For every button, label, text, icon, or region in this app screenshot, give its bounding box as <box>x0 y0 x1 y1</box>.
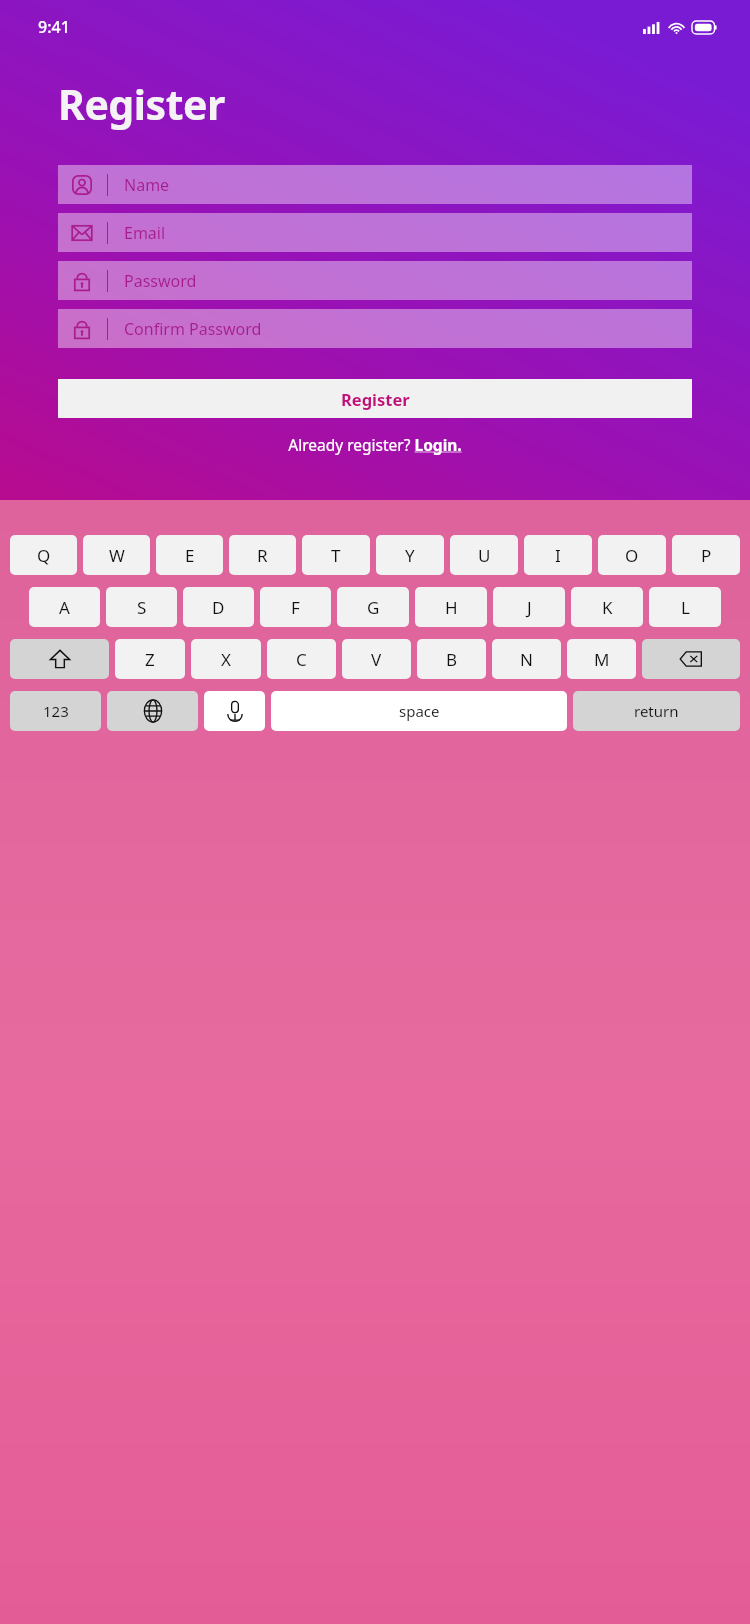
button[interactable]: I <box>524 535 592 575</box>
staticText: Register <box>58 76 225 132</box>
button[interactable]: C <box>267 639 336 679</box>
staticText: T <box>331 544 341 567</box>
staticText: X <box>221 648 231 671</box>
staticText: E <box>185 544 195 567</box>
staticText: A <box>59 596 70 619</box>
button[interactable]: Backspace <box>642 639 740 679</box>
staticText: U <box>478 544 491 567</box>
button[interactable]: X <box>191 639 261 679</box>
staticText: N <box>520 648 533 671</box>
button[interactable]: U <box>450 535 518 575</box>
button[interactable]: G <box>337 587 409 627</box>
button[interactable]: V <box>342 639 411 679</box>
staticText: Register <box>341 388 410 410</box>
button[interactable]: L <box>649 587 721 627</box>
staticText: Name <box>124 174 170 196</box>
staticText: S <box>137 596 147 619</box>
button[interactable]: W <box>83 535 150 575</box>
button[interactable]: R <box>229 535 296 575</box>
button[interactable]: return <box>573 691 740 731</box>
staticText: M <box>594 648 610 671</box>
staticText: Z <box>145 648 155 671</box>
button[interactable]: N <box>492 639 561 679</box>
button[interactable]: Confirm Password <box>58 309 692 348</box>
button[interactable]: E <box>156 535 223 575</box>
button[interactable]: O <box>598 535 666 575</box>
button[interactable]: D <box>183 587 254 627</box>
button[interactable]: Name <box>58 165 692 204</box>
button[interactable]: Password <box>58 261 692 300</box>
button[interactable]: 123 <box>10 691 101 731</box>
button[interactable]: J <box>493 587 565 627</box>
staticText: K <box>602 596 613 619</box>
button[interactable]: Q <box>10 535 77 575</box>
button[interactable]: Register <box>58 379 692 418</box>
staticText: W <box>109 544 125 567</box>
button[interactable]: K <box>571 587 643 627</box>
button[interactable]: Shift <box>10 639 109 679</box>
staticText: V <box>371 648 382 671</box>
staticText: L <box>681 596 690 619</box>
button[interactable]: space <box>271 691 567 731</box>
staticText: R <box>257 544 268 567</box>
button[interactable]: M <box>567 639 636 679</box>
button[interactable]: Next keyboard <box>107 691 198 731</box>
staticText: O <box>625 544 639 567</box>
staticText: J <box>527 596 532 619</box>
staticText: P <box>701 544 712 567</box>
staticText: 123 <box>43 701 69 721</box>
staticText: I <box>555 544 561 567</box>
button[interactable]: A <box>29 587 100 627</box>
button[interactable]: H <box>415 587 487 627</box>
staticText: space <box>399 701 440 721</box>
button[interactable]: Y <box>376 535 444 575</box>
staticText: Email <box>124 222 166 244</box>
staticText: Confirm Password <box>124 318 262 340</box>
button[interactable]: Already register? Login. <box>288 434 462 455</box>
button[interactable]: B <box>417 639 486 679</box>
staticText: B <box>446 648 458 671</box>
staticText: Password <box>124 270 197 292</box>
staticText: D <box>212 596 225 619</box>
button[interactable]: Dictate <box>204 691 265 731</box>
button[interactable]: P <box>672 535 740 575</box>
staticText: H <box>445 596 458 619</box>
button[interactable]: T <box>302 535 370 575</box>
staticText: Y <box>405 544 415 567</box>
staticText: 9:41 <box>38 16 70 38</box>
button[interactable]: S <box>106 587 177 627</box>
staticText: F <box>291 596 300 619</box>
staticText: G <box>367 596 380 619</box>
staticText: Q <box>37 544 51 567</box>
button[interactable]: Email <box>58 213 692 252</box>
staticText: return <box>634 701 679 721</box>
button[interactable]: Z <box>115 639 185 679</box>
button[interactable]: F <box>260 587 331 627</box>
staticText: C <box>296 648 307 671</box>
